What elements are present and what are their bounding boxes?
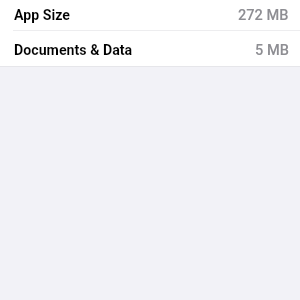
button[interactable]: App Size: [0, 0, 300, 31]
staticText: Documents & Data: [14, 42, 133, 59]
staticText: App Size: [14, 7, 70, 24]
staticText: 5 MB: [255, 41, 289, 58]
button[interactable]: Documents & Data: [0, 31, 300, 67]
staticText: 272 MB: [238, 6, 289, 23]
